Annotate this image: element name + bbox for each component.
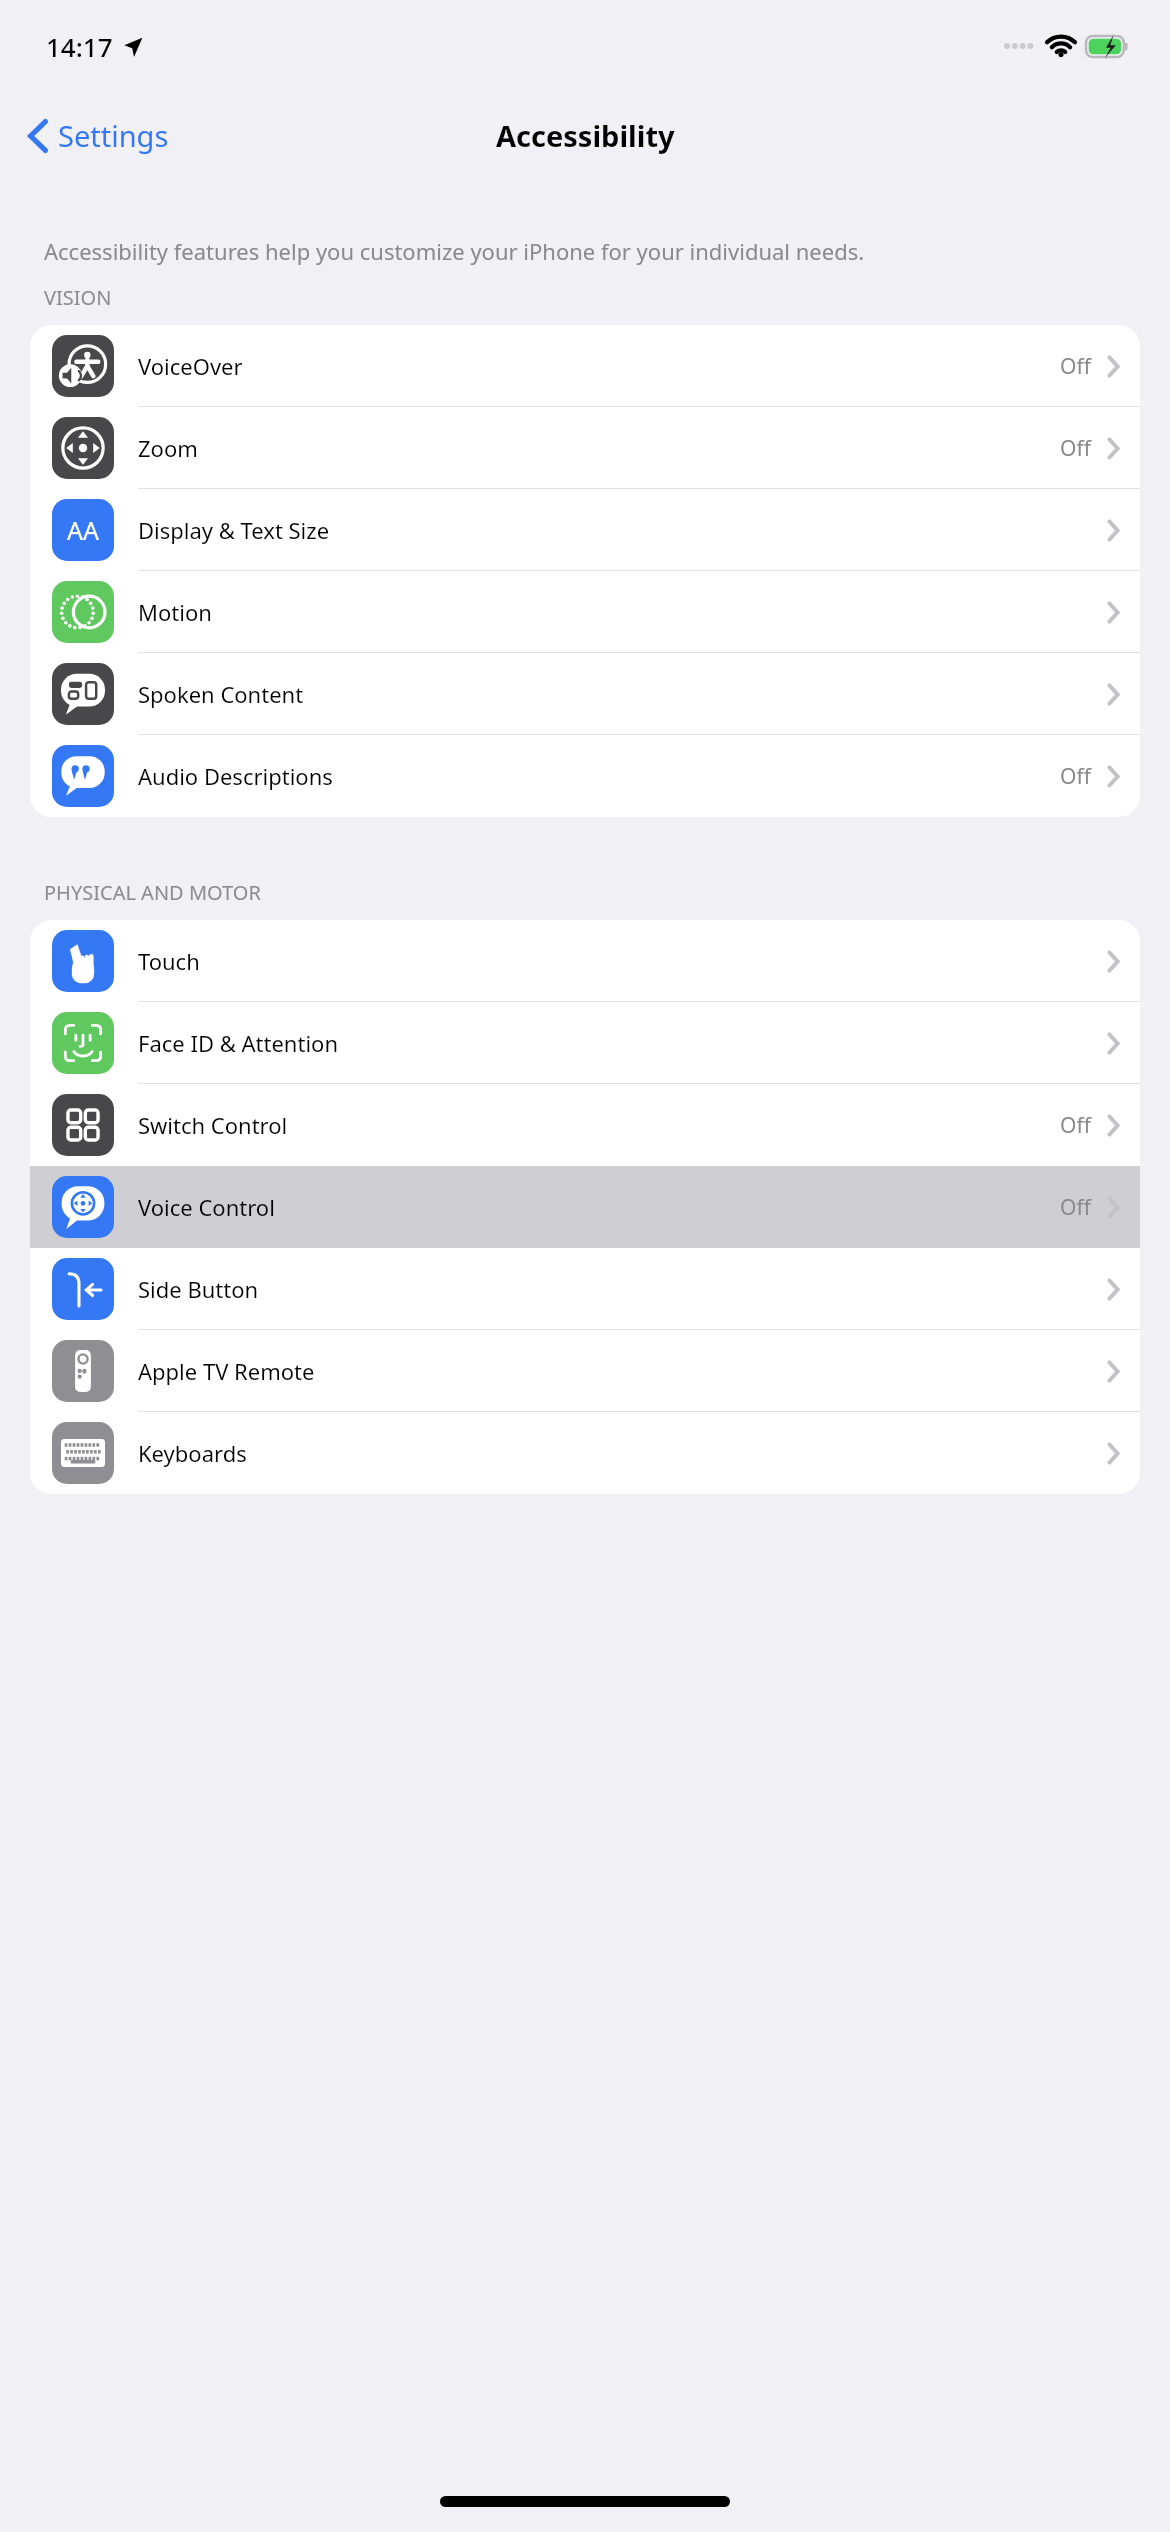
- button[interactable]: AA: [30, 489, 1140, 571]
- staticText: Off: [1060, 762, 1091, 791]
- staticText: Keyboards: [138, 1438, 247, 1468]
- staticText: Off: [1060, 1111, 1091, 1140]
- button[interactable]: Touch: [30, 920, 1140, 1002]
- button[interactable]: VoiceOver: [30, 325, 1140, 407]
- staticText: Side Button: [138, 1274, 259, 1304]
- staticText: Touch: [138, 946, 200, 976]
- staticText: Accessibility features help you customiz…: [44, 236, 865, 266]
- staticText: Accessibility: [496, 116, 675, 155]
- button[interactable]: Keyboards: [30, 1412, 1140, 1494]
- staticText: Motion: [138, 597, 212, 627]
- button[interactable]: Side Button: [30, 1248, 1140, 1330]
- button[interactable]: Settings: [22, 110, 175, 161]
- button[interactable]: Apple TV Remote: [30, 1330, 1140, 1412]
- button[interactable]: Spoken Content: [30, 653, 1140, 735]
- button[interactable]: Switch Control: [30, 1084, 1140, 1166]
- staticText: Zoom: [138, 433, 198, 463]
- staticText: PHYSICAL AND MOTOR: [44, 879, 261, 906]
- staticText: VISION: [44, 284, 112, 311]
- staticText: VoiceOver: [138, 351, 243, 381]
- staticText: Apple TV Remote: [138, 1356, 315, 1386]
- staticText: Voice Control: [138, 1192, 275, 1222]
- staticText: Display & Text Size: [138, 515, 330, 545]
- staticText: Settings: [58, 116, 169, 155]
- button[interactable]: Voice Control: [30, 1166, 1140, 1248]
- button[interactable]: Zoom: [30, 407, 1140, 489]
- button[interactable]: Audio Descriptions: [30, 735, 1140, 817]
- staticText: Switch Control: [138, 1110, 288, 1140]
- button[interactable]: Motion: [30, 571, 1140, 653]
- staticText: Off: [1060, 1193, 1091, 1222]
- staticText: 14:17: [46, 29, 113, 64]
- staticText: AA: [67, 513, 99, 547]
- staticText: Spoken Content: [138, 679, 304, 709]
- staticText: Audio Descriptions: [138, 761, 333, 791]
- staticText: Face ID & Attention: [138, 1028, 338, 1058]
- staticText: Off: [1060, 434, 1091, 463]
- staticText: Off: [1060, 352, 1091, 381]
- button[interactable]: Face ID & Attention: [30, 1002, 1140, 1084]
